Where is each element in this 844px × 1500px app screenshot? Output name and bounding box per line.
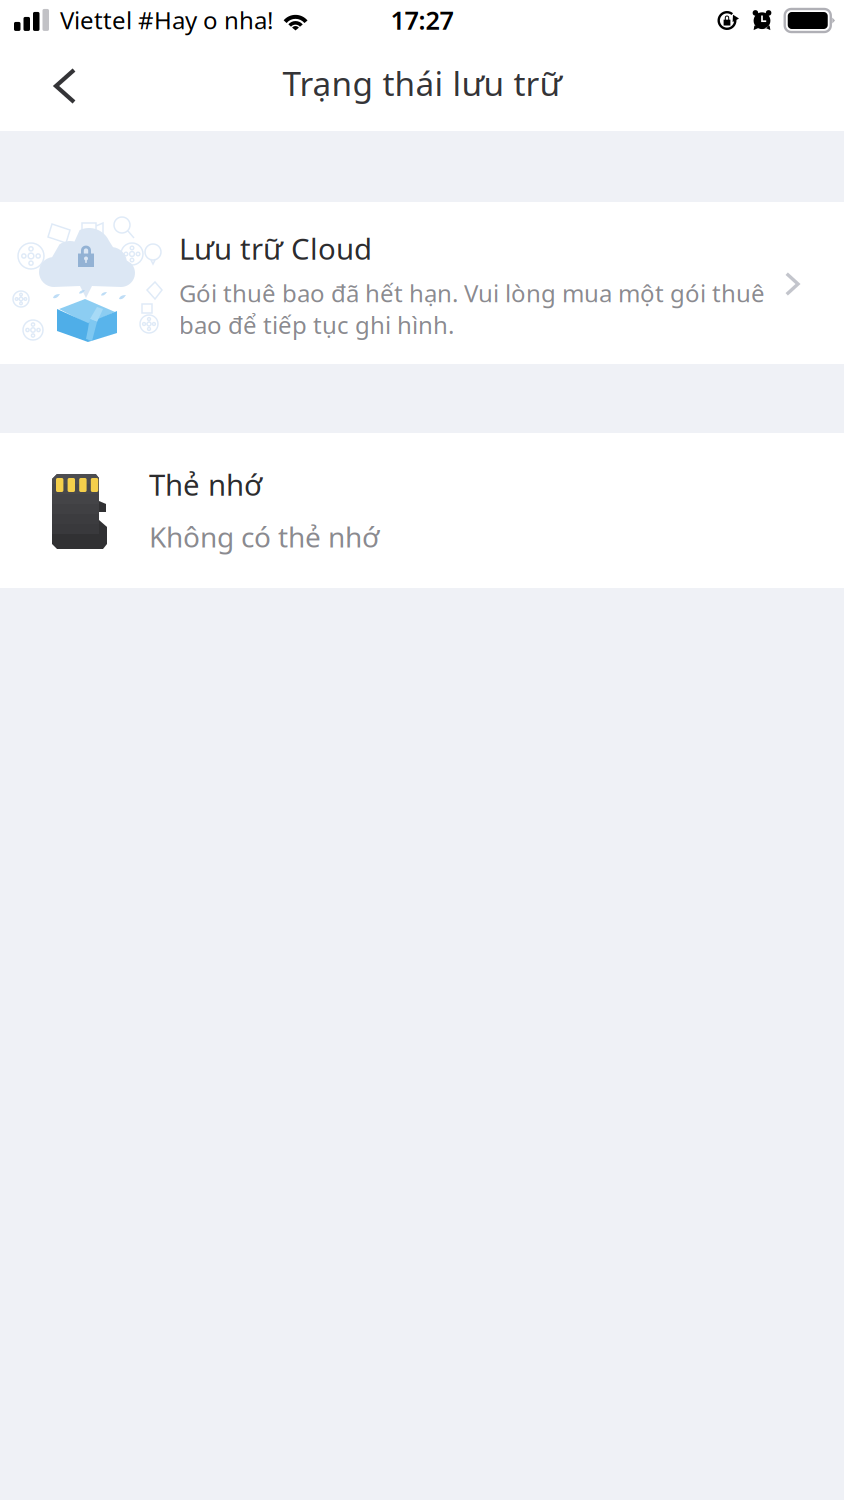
staticText: Lưu trữ Cloud — [179, 229, 372, 268]
button[interactable]: Back — [0, 52, 103, 130]
button[interactable]: Lưu trữ Cloud — [0, 202, 844, 364]
staticText: Viettel #Hay o nha! — [60, 4, 273, 36]
staticText: 17:27 — [390, 3, 453, 37]
staticText: Thẻ nhớ — [149, 465, 262, 504]
staticText: Không có thẻ nhớ — [149, 518, 379, 555]
staticText: Gói thuê bao đã hết hạn. Vui lòng mua mộ… — [179, 277, 765, 341]
staticText: Trạng thái lưu trữ — [282, 61, 561, 105]
button[interactable]: Thẻ nhớ — [0, 433, 844, 588]
